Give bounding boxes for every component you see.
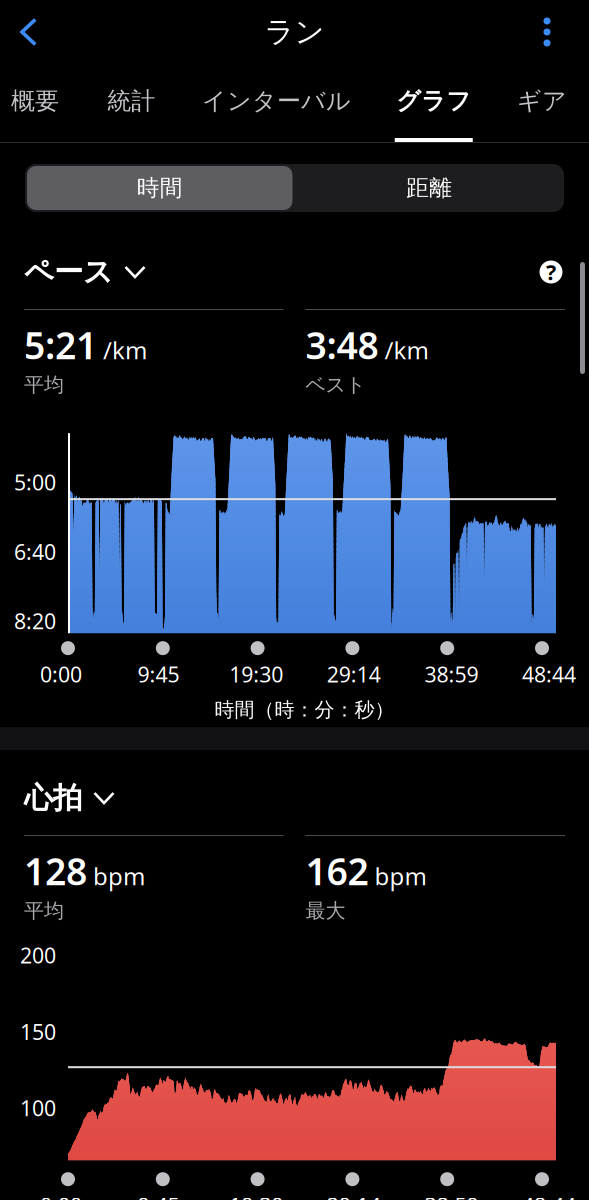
staticText: /km bbox=[103, 334, 147, 366]
button[interactable]: グラフ bbox=[395, 64, 473, 142]
staticText: 150 bbox=[20, 1017, 56, 1046]
staticText: 100 bbox=[20, 1094, 56, 1122]
staticText: ベスト bbox=[305, 373, 365, 397]
button[interactable]: 概要 bbox=[8, 64, 62, 142]
button[interactable]: ペース bbox=[24, 250, 147, 294]
button[interactable]: Back bbox=[0, 0, 51, 64]
staticText: 48:44 bbox=[522, 660, 576, 688]
staticText: 5:21 bbox=[24, 320, 97, 370]
staticText: 5:00 bbox=[14, 468, 56, 496]
staticText: グラフ bbox=[396, 86, 471, 116]
button[interactable]: Help bbox=[535, 256, 567, 288]
staticText: 200 bbox=[20, 941, 56, 969]
staticText: 162 bbox=[305, 846, 368, 896]
staticText: 19:30 bbox=[229, 660, 283, 688]
staticText: 0:00 bbox=[40, 660, 82, 688]
staticText: インターバル bbox=[202, 86, 351, 116]
staticText: ラン bbox=[264, 14, 324, 50]
staticText: bpm bbox=[374, 860, 426, 892]
staticText: 9:45 bbox=[138, 1191, 180, 1200]
staticText: 29:14 bbox=[327, 660, 381, 688]
staticText: 時間 bbox=[137, 174, 183, 202]
staticText: 38:59 bbox=[424, 660, 478, 688]
staticText: 48:44 bbox=[522, 1191, 576, 1200]
button[interactable]: 距離 bbox=[294, 164, 564, 212]
staticText: 19:30 bbox=[229, 1191, 283, 1200]
staticText: ペース bbox=[24, 254, 113, 290]
button[interactable]: 統計 bbox=[104, 64, 158, 142]
button[interactable]: インターバル bbox=[200, 64, 352, 142]
staticText: bpm bbox=[93, 860, 145, 892]
staticText: 128 bbox=[24, 846, 87, 896]
staticText: 3:48 bbox=[305, 320, 378, 370]
staticText: 平均 bbox=[24, 899, 64, 923]
staticText: 最大 bbox=[305, 899, 345, 923]
staticText: 38:59 bbox=[424, 1191, 478, 1200]
button[interactable]: 心拍 bbox=[24, 776, 116, 820]
staticText: 29:14 bbox=[327, 1191, 381, 1200]
staticText: 時間（時：分：秒） bbox=[214, 697, 394, 722]
staticText: ギア bbox=[517, 86, 567, 116]
button[interactable]: More options bbox=[505, 0, 589, 64]
button[interactable]: ギア bbox=[515, 64, 569, 142]
staticText: ? bbox=[546, 258, 556, 286]
staticText: 0:00 bbox=[40, 1191, 82, 1200]
staticText: 8:20 bbox=[14, 607, 56, 635]
staticText: 平均 bbox=[24, 373, 64, 397]
button[interactable]: 時間 bbox=[25, 164, 294, 212]
staticText: 距離 bbox=[406, 174, 452, 202]
staticText: 9:45 bbox=[138, 660, 180, 688]
staticText: 心拍 bbox=[24, 780, 82, 816]
staticText: 統計 bbox=[107, 86, 155, 116]
staticText: 概要 bbox=[11, 86, 59, 116]
staticText: /km bbox=[384, 334, 428, 366]
staticText: 6:40 bbox=[14, 537, 56, 566]
